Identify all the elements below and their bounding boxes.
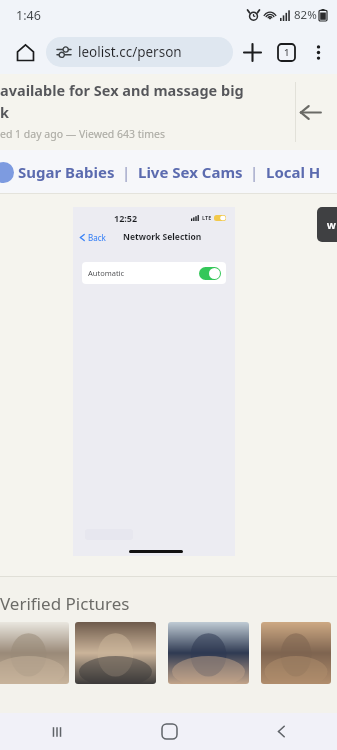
button[interactable]: Verified picture 1 — [0, 622, 69, 684]
button[interactable]: Home — [113, 713, 225, 750]
button[interactable]: Open side panel — [317, 207, 337, 242]
staticText: 12:52 — [114, 212, 138, 224]
staticText: 82% — [294, 7, 317, 23]
staticText: | — [115, 163, 138, 182]
staticText: 1 — [284, 46, 290, 59]
staticText: | — [243, 163, 266, 182]
button[interactable]: Sugar Babies — [18, 162, 115, 182]
button[interactable]: Automatic — [82, 262, 226, 284]
staticText: leolist.cc/person — [78, 43, 182, 61]
button[interactable]: Verified picture 4 — [261, 622, 331, 684]
staticText: 1:46 — [16, 7, 41, 24]
button[interactable]: Back — [225, 713, 337, 750]
staticText: Network Selection — [123, 231, 202, 243]
staticText: k — [0, 102, 9, 122]
button[interactable]: Live Sex Cams — [138, 162, 243, 182]
button[interactable]: New tab — [235, 35, 269, 69]
button[interactable]: Local H — [266, 162, 321, 182]
staticText: W — [327, 219, 336, 231]
staticText: Verified Pictures — [0, 592, 130, 615]
staticText: ed 1 day ago — Viewed 643 times — [0, 127, 166, 141]
button[interactable]: Verified picture 2 — [75, 622, 156, 684]
button[interactable]: Recent apps — [0, 713, 113, 750]
button[interactable]: Verified picture 3 — [168, 622, 249, 684]
staticText: available for Sex and massage big — [0, 80, 244, 100]
button[interactable]: More options — [303, 37, 333, 67]
staticText: Automatic — [88, 268, 125, 278]
button[interactable]: Previous ad — [293, 95, 327, 129]
button[interactable]: leolist.cc/person — [46, 37, 233, 67]
staticText: LTE — [202, 214, 212, 221]
button[interactable]: Tabs — [269, 35, 303, 69]
button[interactable]: Home — [8, 35, 42, 69]
button[interactable]: Back — [79, 232, 106, 243]
staticText: Back — [88, 232, 106, 243]
